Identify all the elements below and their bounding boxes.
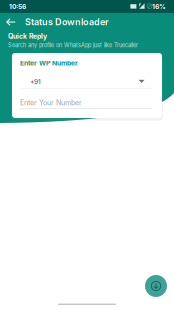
staticText: 16% <box>152 2 166 11</box>
button[interactable]: +91 <box>0 75 174 88</box>
staticText: 10:56 <box>9 2 26 11</box>
staticText: Search any profile on WhatsApp just like… <box>8 42 138 49</box>
staticText: +91 <box>30 78 41 86</box>
button[interactable]: Download status <box>145 275 167 297</box>
staticText: Status Downloader <box>25 16 109 27</box>
staticText: Enter WP Number <box>20 59 78 67</box>
staticText: Enter Your Number <box>20 98 82 107</box>
button[interactable]: Enter Your Number <box>0 96 174 109</box>
button[interactable]: Status Downloader <box>0 15 174 29</box>
staticText: Quick Reply <box>8 32 47 40</box>
